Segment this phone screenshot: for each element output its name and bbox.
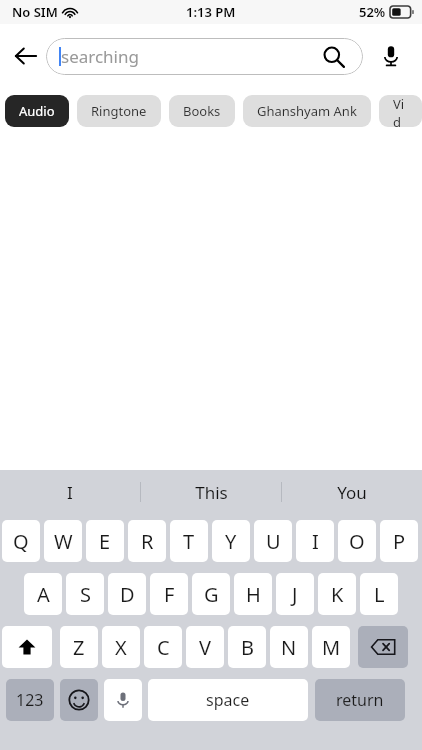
button[interactable]: O [338, 520, 376, 562]
button[interactable]: Q [2, 520, 40, 562]
button[interactable]: You [282, 470, 422, 514]
staticText: I [67, 481, 73, 504]
button[interactable]: D [108, 573, 146, 615]
staticText: V [199, 634, 211, 661]
staticText: D [120, 581, 135, 608]
staticText: Ghanshyam Ank [257, 102, 357, 120]
button[interactable]: Books [169, 95, 235, 127]
button[interactable]: G [192, 573, 230, 615]
button[interactable]: Y [212, 520, 250, 562]
button[interactable]: Voice input [104, 679, 142, 721]
staticText: Z [73, 634, 85, 661]
button[interactable]: Emoji [60, 679, 98, 721]
staticText: N [281, 634, 297, 661]
staticText: Q [13, 528, 29, 555]
staticText: C [157, 634, 170, 661]
staticText: L [374, 581, 385, 608]
button[interactable]: Search [321, 44, 347, 70]
staticText: searching [61, 45, 139, 68]
staticText: W [54, 528, 73, 555]
staticText: 52% [359, 3, 386, 21]
button[interactable]: searching [46, 38, 363, 75]
button[interactable]: 123 [6, 679, 54, 721]
staticText: A [37, 581, 50, 608]
staticText: Ringtone [91, 102, 147, 120]
staticText: 123 [16, 689, 44, 711]
button[interactable]: space [148, 679, 308, 721]
staticText: H [246, 581, 261, 608]
button[interactable]: Ringtone [77, 95, 161, 127]
button[interactable]: C [144, 626, 182, 668]
button[interactable]: Z [60, 626, 98, 668]
button[interactable]: W [44, 520, 82, 562]
button[interactable]: E [86, 520, 124, 562]
button[interactable]: H [234, 573, 272, 615]
staticText: F [164, 581, 175, 608]
button[interactable]: return [315, 679, 405, 721]
staticText: K [331, 581, 344, 608]
button[interactable]: Voice search [374, 39, 408, 73]
staticText: No SIM [12, 3, 58, 21]
button[interactable]: A [24, 573, 62, 615]
staticText: G [204, 581, 219, 608]
staticText: U [266, 528, 281, 555]
button[interactable]: Ghanshyam Ank [243, 95, 371, 127]
button[interactable]: V [186, 626, 224, 668]
staticText: return [336, 689, 384, 711]
button[interactable]: U [254, 520, 292, 562]
staticText: I [312, 528, 319, 555]
staticText: X [115, 634, 127, 661]
button[interactable]: F [150, 573, 188, 615]
staticText: M [322, 634, 341, 661]
button[interactable]: Shift [2, 626, 52, 668]
button[interactable]: M [312, 626, 350, 668]
staticText: Y [225, 528, 237, 555]
staticText: Video [393, 95, 408, 127]
button[interactable]: N [270, 626, 308, 668]
staticText: Audio [19, 102, 55, 120]
staticText: O [349, 528, 365, 555]
button[interactable]: This [141, 470, 281, 514]
staticText: S [80, 581, 91, 608]
staticText: 1:13 PM [186, 3, 236, 21]
staticText: space [206, 689, 250, 711]
staticText: T [183, 528, 195, 555]
button[interactable]: T [170, 520, 208, 562]
button[interactable]: Backspace [358, 626, 408, 668]
button[interactable]: J [276, 573, 314, 615]
staticText: E [99, 528, 111, 555]
button[interactable]: X [102, 626, 140, 668]
staticText: B [241, 634, 254, 661]
button[interactable]: L [360, 573, 398, 615]
button[interactable]: R [128, 520, 166, 562]
button[interactable]: Audio [5, 95, 69, 127]
staticText: P [393, 528, 406, 555]
button[interactable]: Video [379, 95, 422, 127]
button[interactable]: S [66, 573, 104, 615]
button[interactable]: K [318, 573, 356, 615]
button[interactable]: I [0, 470, 140, 514]
staticText: Books [183, 102, 221, 120]
staticText: R [141, 528, 154, 555]
staticText: This [195, 481, 228, 504]
button[interactable]: Back [8, 38, 44, 74]
button[interactable]: B [228, 626, 266, 668]
button[interactable]: P [380, 520, 418, 562]
staticText: You [337, 481, 367, 504]
button[interactable]: I [296, 520, 334, 562]
staticText: J [292, 581, 298, 608]
